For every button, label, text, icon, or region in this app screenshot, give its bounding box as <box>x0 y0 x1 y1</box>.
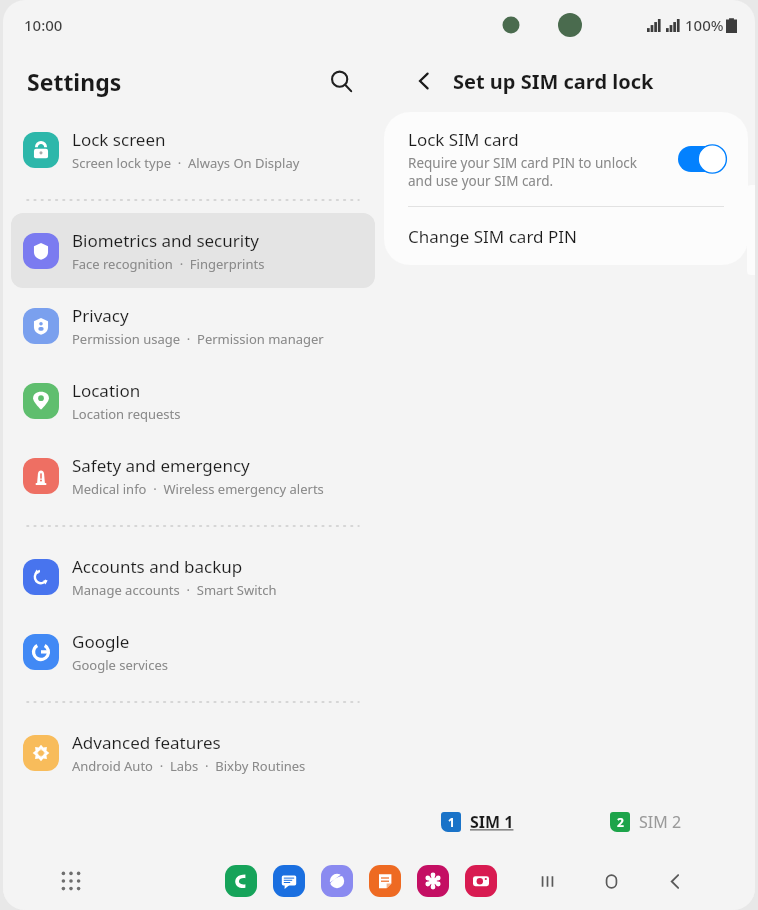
staticText: Biometrics and security <box>72 229 259 252</box>
button[interactable]: gallery <box>417 865 449 897</box>
staticText: Screen lock type · Always On Display <box>72 154 300 172</box>
staticText: Advanced features <box>72 731 221 754</box>
button[interactable]: Apps <box>51 861 91 901</box>
button[interactable]: internet <box>321 865 353 897</box>
staticText: Medical info · Wireless emergency alerts <box>72 480 324 498</box>
button[interactable]: Safety and emergency <box>11 438 375 513</box>
staticText: Location requests <box>72 405 181 423</box>
button[interactable]: Location <box>11 363 375 438</box>
button[interactable]: camera <box>465 865 497 897</box>
staticText: Privacy <box>72 304 129 327</box>
staticText: Android Auto · Labs · Bixby Routines <box>72 757 306 775</box>
staticText: Location <box>72 379 141 402</box>
staticText: Face recognition · Fingerprints <box>72 255 265 273</box>
button[interactable]: messages <box>273 865 305 897</box>
staticText: Permission usage · Permission manager <box>72 330 324 348</box>
staticText: 100% <box>685 15 724 35</box>
staticText: 10:00 <box>24 15 63 35</box>
button[interactable]: Advanced features <box>11 715 375 790</box>
staticText: 1 <box>448 814 455 830</box>
button[interactable]: 2 <box>610 805 682 839</box>
staticText: Change SIM card PIN <box>408 225 577 248</box>
staticText: Lock screen <box>72 128 166 151</box>
staticText: SIM 2 <box>639 811 682 833</box>
button[interactable]: Biometrics and security <box>11 213 375 288</box>
button[interactable]: Change SIM card PIN <box>384 207 748 265</box>
button[interactable]: notes <box>369 865 401 897</box>
button[interactable]: Privacy <box>11 288 375 363</box>
staticText: Google services <box>72 656 168 674</box>
staticText: Settings <box>27 66 122 97</box>
button[interactable]: home <box>593 863 629 899</box>
button[interactable]: back <box>657 863 693 899</box>
staticText: Safety and emergency <box>72 454 250 477</box>
staticText: 2 <box>617 814 624 830</box>
button[interactable]: recents <box>529 863 565 899</box>
button[interactable]: 1 <box>441 805 514 839</box>
staticText: Require your SIM card PIN to unlock and … <box>408 154 662 190</box>
button[interactable]: Lock SIM card toggle <box>676 144 728 174</box>
staticText: Lock SIM card <box>408 128 519 151</box>
button[interactable]: Accounts and backup <box>11 539 375 614</box>
button[interactable]: Back <box>405 62 443 100</box>
button[interactable]: Google <box>11 614 375 689</box>
staticText: Accounts and backup <box>72 555 243 578</box>
button[interactable]: Lock SIM card <box>384 112 748 206</box>
button[interactable]: Lock screen <box>11 112 375 187</box>
staticText: Google <box>72 630 130 653</box>
staticText: SIM 1 <box>470 811 514 833</box>
button[interactable]: Search <box>321 61 361 101</box>
staticText: Manage accounts · Smart Switch <box>72 581 277 599</box>
button[interactable]: phone <box>225 865 257 897</box>
staticText: Set up SIM card lock <box>453 68 654 95</box>
